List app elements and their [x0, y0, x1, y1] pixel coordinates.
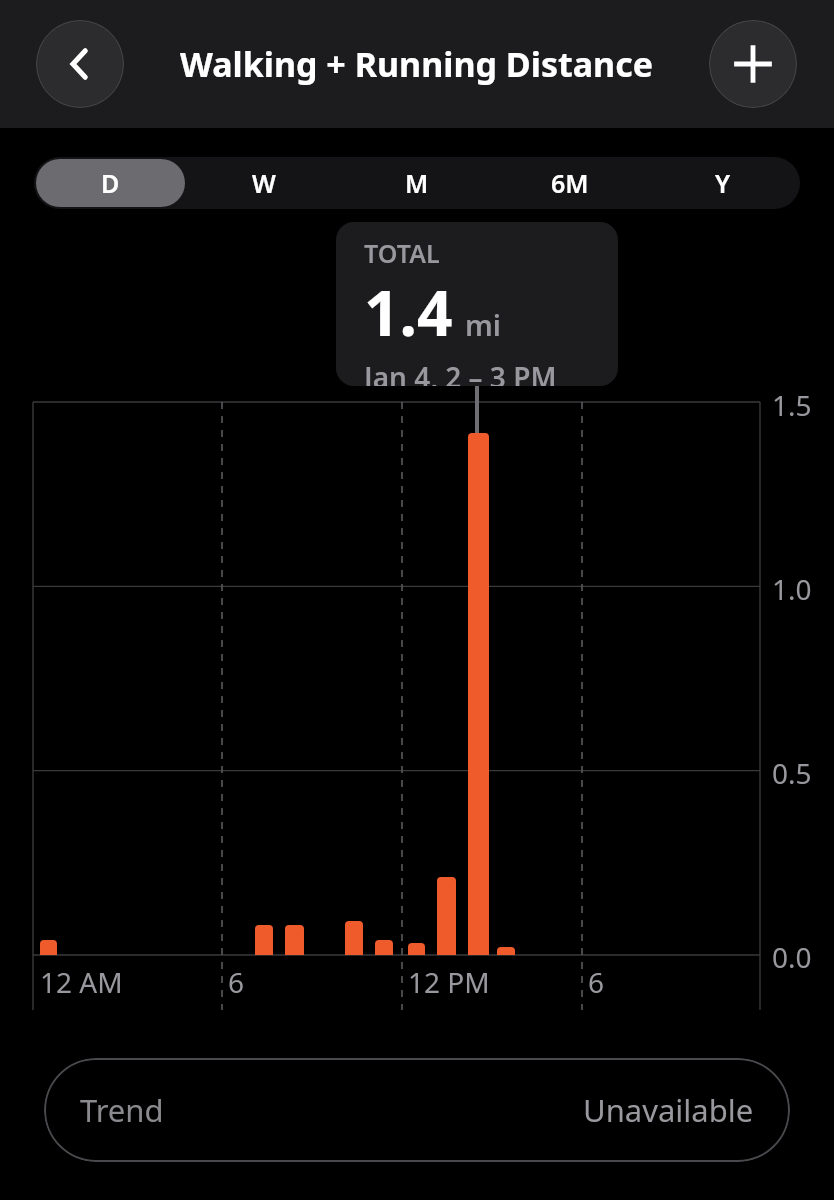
staticText: mi	[465, 305, 502, 344]
staticText: 0.0	[772, 938, 812, 976]
staticText: 1.4	[364, 270, 453, 354]
button[interactable]: TOTAL	[336, 222, 618, 386]
staticText: Trend	[80, 1089, 164, 1131]
button[interactable]: Trend	[44, 1058, 790, 1162]
staticText: Jan 4, 2 – 3 PM	[364, 358, 557, 386]
staticText: W	[252, 166, 276, 200]
button[interactable]: M	[342, 159, 491, 207]
staticText: TOTAL	[364, 236, 440, 270]
staticText: 0.5	[772, 754, 812, 792]
staticText: 12 PM	[408, 963, 490, 1001]
button[interactable]: Y	[648, 159, 797, 207]
button[interactable]: D	[36, 159, 185, 207]
button[interactable]: W	[189, 159, 338, 207]
staticText: Walking + Running Distance	[180, 41, 654, 87]
button[interactable]: Add data	[709, 20, 797, 108]
staticText: 1.5	[772, 386, 812, 424]
staticText: Y	[715, 166, 731, 200]
staticText: 12 AM	[40, 963, 123, 1001]
staticText: 6	[228, 963, 245, 1001]
staticText: 6M	[551, 166, 589, 200]
button[interactable]: Back	[36, 20, 124, 108]
staticText: D	[101, 166, 120, 200]
staticText: 6	[588, 963, 605, 1001]
staticText: Unavailable	[583, 1089, 754, 1131]
button[interactable]: 6M	[495, 159, 644, 207]
staticText: M	[405, 166, 429, 200]
staticText: 1.0	[772, 570, 812, 608]
